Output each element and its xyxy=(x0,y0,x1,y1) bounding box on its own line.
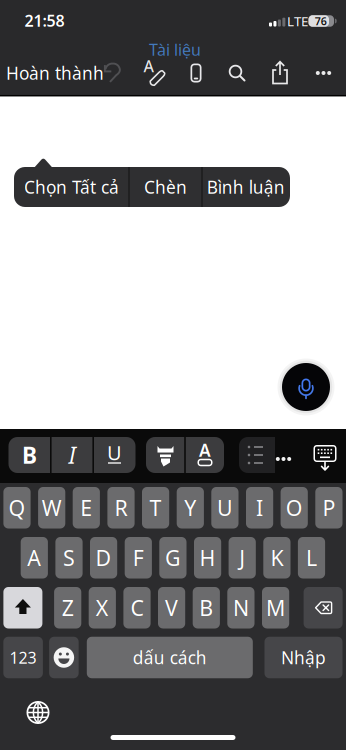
staticText: L xyxy=(306,544,317,572)
button[interactable]: I xyxy=(246,487,273,528)
button[interactable]: Y xyxy=(177,487,204,528)
staticText: Hoàn thành xyxy=(6,61,104,84)
staticText: U xyxy=(107,439,122,466)
staticText: D xyxy=(96,544,112,572)
staticText: Bình luận xyxy=(207,175,285,198)
button[interactable]: H xyxy=(194,537,221,578)
button[interactable]: Q xyxy=(3,487,31,528)
staticText: Z xyxy=(62,594,74,622)
button[interactable] xyxy=(222,58,252,88)
button[interactable]: Bình luận xyxy=(203,167,289,207)
button[interactable] xyxy=(308,58,338,88)
button[interactable] xyxy=(49,637,79,678)
button[interactable] xyxy=(304,587,343,628)
staticText: 123 xyxy=(10,647,37,668)
button[interactable]: 123 xyxy=(3,637,43,678)
button[interactable]: D xyxy=(90,537,117,578)
button[interactable]: Hoàn thành xyxy=(7,58,103,88)
button[interactable]: E xyxy=(73,487,100,528)
button[interactable]: B xyxy=(193,587,220,628)
staticText: I xyxy=(68,440,75,470)
button[interactable]: O xyxy=(281,487,308,528)
staticText: R xyxy=(114,494,127,522)
staticText: W xyxy=(42,494,62,522)
staticText: U xyxy=(217,494,233,522)
staticText: G xyxy=(165,544,181,572)
button[interactable]: K xyxy=(263,537,290,578)
button[interactable]: S xyxy=(55,537,83,578)
staticText: Q xyxy=(8,494,25,522)
button[interactable] xyxy=(239,437,269,473)
staticText: Tài liệu xyxy=(149,39,201,60)
staticText: S xyxy=(63,544,75,572)
button[interactable]: B xyxy=(9,437,50,473)
staticText: O xyxy=(286,494,303,522)
staticText: M xyxy=(266,594,285,622)
staticText: B xyxy=(22,440,37,470)
button[interactable] xyxy=(24,698,52,726)
button[interactable]: A xyxy=(186,437,224,473)
button[interactable]: L xyxy=(298,537,325,578)
button[interactable]: U xyxy=(94,437,135,473)
button[interactable]: G xyxy=(159,537,186,578)
staticText: X xyxy=(96,594,109,622)
button[interactable]: I xyxy=(51,437,92,473)
staticText: H xyxy=(200,544,216,572)
button[interactable] xyxy=(265,57,295,87)
button[interactable]: U xyxy=(211,487,238,528)
staticText: A xyxy=(199,438,211,461)
staticText: B xyxy=(199,594,213,622)
button[interactable]: J xyxy=(229,537,256,578)
button[interactable] xyxy=(310,440,340,474)
staticText: 76 xyxy=(315,14,327,28)
staticText: A xyxy=(143,55,153,77)
button[interactable]: A xyxy=(138,57,170,89)
button[interactable]: N xyxy=(227,587,254,628)
staticText: I xyxy=(256,494,263,522)
staticText: Chèn xyxy=(144,175,187,198)
staticText: K xyxy=(270,544,283,572)
staticText: 21:58 xyxy=(24,10,64,31)
staticText: dấu cách xyxy=(133,646,207,669)
button[interactable]: Chèn xyxy=(130,167,201,207)
staticText: E xyxy=(80,494,92,522)
button[interactable] xyxy=(181,58,211,88)
button[interactable]: W xyxy=(38,487,65,528)
staticText: Chọn Tất cả xyxy=(24,175,119,198)
staticText: LTE xyxy=(287,12,308,30)
staticText: A xyxy=(27,544,41,572)
button[interactable]: Z xyxy=(54,587,81,628)
staticText: T xyxy=(150,494,162,522)
staticText: Y xyxy=(184,494,196,522)
button[interactable] xyxy=(3,587,42,628)
button[interactable]: A xyxy=(21,537,48,578)
button[interactable] xyxy=(146,437,184,473)
button[interactable]: X xyxy=(89,587,116,628)
staticText: V xyxy=(165,594,178,622)
button[interactable]: R xyxy=(107,487,135,528)
staticText: P xyxy=(322,494,335,522)
button[interactable]: Chọn Tất cả xyxy=(15,167,128,207)
button[interactable]: C xyxy=(123,587,151,628)
button[interactable] xyxy=(280,361,332,413)
staticText: Nhập xyxy=(281,646,326,669)
staticText: C xyxy=(130,594,143,622)
button[interactable]: dấu cách xyxy=(87,637,253,678)
button[interactable]: M xyxy=(262,587,289,628)
button[interactable]: F xyxy=(125,537,152,578)
staticText: N xyxy=(233,594,249,622)
button[interactable]: V xyxy=(158,587,185,628)
staticText: J xyxy=(239,544,245,572)
staticText: F xyxy=(133,544,144,572)
button[interactable] xyxy=(268,444,298,474)
button[interactable]: T xyxy=(142,487,169,528)
button[interactable]: Nhập xyxy=(264,637,342,678)
button[interactable]: P xyxy=(315,487,342,528)
button[interactable] xyxy=(97,58,127,88)
